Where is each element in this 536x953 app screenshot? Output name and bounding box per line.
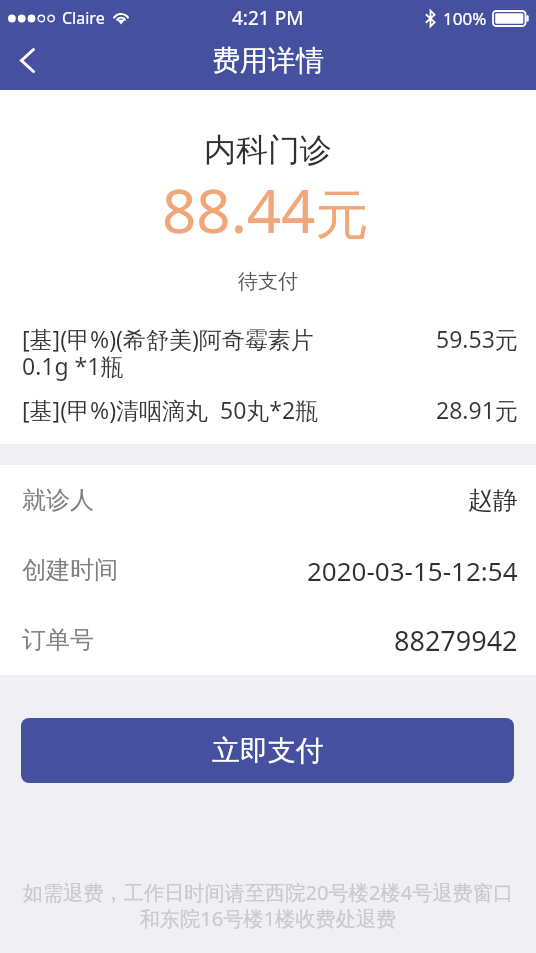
button[interactable]: Back — [0, 36, 54, 90]
staticText: Claire — [62, 7, 105, 29]
staticText: 88279942 — [394, 622, 518, 659]
button[interactable]: 订单号 — [22, 605, 518, 675]
staticText: 待支付 — [238, 269, 298, 294]
staticText: 59.53元 — [436, 323, 518, 354]
staticText: 内科门诊 — [204, 130, 332, 170]
button[interactable]: 立即支付 — [21, 718, 514, 783]
staticText: 立即支付 — [212, 733, 324, 768]
staticText: 创建时间 — [22, 555, 118, 585]
staticText: 88.44元 — [162, 169, 375, 251]
staticText: 4:21 PM — [232, 5, 304, 31]
staticText: 2020-03-15-12:54 — [307, 553, 518, 588]
button[interactable]: 就诊人 — [22, 465, 518, 535]
button[interactable]: 创建时间 — [22, 535, 518, 605]
staticText: 费用详情 — [212, 43, 324, 78]
staticText: [基](甲%)清咽滴丸 50丸*2瓶 — [22, 394, 436, 425]
staticText: [基](甲%)(希舒美)阿奇霉素片 0.1g *1瓶 — [22, 323, 436, 382]
staticText: 赵静 — [468, 485, 518, 516]
staticText: 就诊人 — [22, 485, 94, 515]
staticText: 100% — [443, 7, 487, 30]
staticText: 28.91元 — [436, 394, 518, 425]
staticText: 订单号 — [22, 625, 94, 655]
staticText: 如需退费，工作日时间请至西院20号楼2楼4号退费窗口 和东院16号楼1楼收费处退… — [12, 878, 524, 932]
